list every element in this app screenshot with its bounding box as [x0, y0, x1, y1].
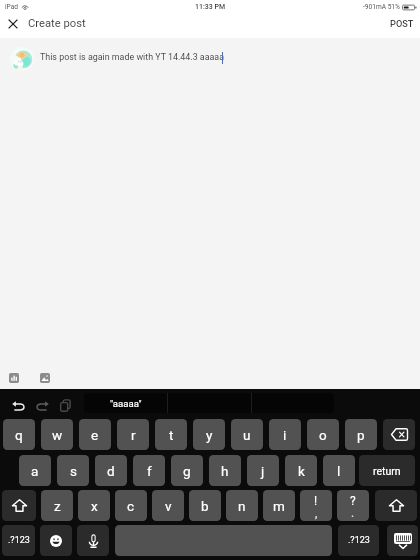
staticText: r	[131, 427, 136, 443]
button[interactable]: q	[3, 419, 35, 450]
staticText: y	[206, 427, 213, 443]
button[interactable]: Close	[3, 14, 23, 34]
button[interactable]: ?	[337, 490, 369, 521]
button[interactable]: y	[193, 419, 225, 450]
staticText: d	[107, 463, 115, 479]
button[interactable]: Redo	[34, 397, 51, 414]
button[interactable]: "aaaaa"	[84, 393, 167, 413]
staticText: "aaaaa"	[110, 398, 142, 409]
button[interactable]: Shift	[2, 490, 36, 521]
staticText: w	[52, 427, 63, 443]
staticText: o	[319, 427, 327, 443]
button[interactable]: n	[226, 490, 258, 521]
staticText: .	[351, 506, 355, 520]
staticText: z	[54, 498, 61, 514]
staticText: n	[238, 498, 246, 514]
button[interactable]: k	[285, 455, 317, 486]
staticText: s	[70, 463, 77, 479]
staticText: .?123	[348, 535, 370, 546]
button[interactable]: Dictate	[77, 525, 109, 556]
button[interactable]: g	[171, 455, 203, 486]
staticText: t	[169, 427, 174, 443]
staticText: q	[15, 427, 23, 443]
button[interactable]: x	[78, 490, 110, 521]
button[interactable]: Emoji	[40, 525, 72, 556]
staticText: return	[373, 465, 401, 477]
button[interactable]: v	[152, 490, 184, 521]
staticText: ,	[315, 506, 318, 520]
button[interactable]: Hide keyboard	[387, 525, 418, 556]
button[interactable]: o	[307, 419, 339, 450]
button[interactable]: l	[323, 455, 355, 486]
staticText: iPad	[5, 3, 19, 11]
staticText: e	[91, 427, 99, 443]
staticText: f	[147, 463, 152, 479]
button[interactable]: .?123	[338, 525, 379, 556]
button[interactable]: p	[345, 419, 377, 450]
button[interactable]: Image	[40, 373, 50, 383]
button[interactable]: Backspace	[383, 419, 415, 450]
button[interactable]: c	[115, 490, 147, 521]
staticText: This post is again made with YT 14.44.3 …	[40, 52, 225, 62]
staticText: ?	[350, 494, 356, 508]
button[interactable]: r	[117, 419, 149, 450]
staticText: m	[273, 498, 285, 514]
button[interactable]: b	[189, 490, 221, 521]
button[interactable]: d	[95, 455, 127, 486]
button[interactable]: POST	[388, 16, 416, 31]
staticText: g	[183, 463, 191, 479]
button[interactable]: Poll	[9, 373, 19, 383]
button[interactable]: m	[263, 490, 295, 521]
button[interactable]: z	[41, 490, 73, 521]
button[interactable]: e	[79, 419, 111, 450]
button[interactable]: !	[300, 490, 332, 521]
staticText: !	[314, 494, 318, 508]
button[interactable]: w	[41, 419, 73, 450]
button[interactable]: s	[57, 455, 89, 486]
button[interactable]: f	[133, 455, 165, 486]
staticText: i	[283, 427, 287, 443]
button[interactable]: t	[155, 419, 187, 450]
staticText: c	[127, 498, 135, 514]
staticText: x	[91, 498, 98, 514]
staticText: POST	[390, 18, 414, 29]
staticText: j	[261, 463, 265, 479]
button[interactable]: return	[359, 455, 415, 486]
button[interactable]	[115, 525, 332, 556]
staticText: p	[357, 427, 365, 443]
staticText: k	[298, 463, 305, 479]
button[interactable]: u	[231, 419, 263, 450]
staticText: .?123	[8, 535, 30, 546]
staticText: v	[165, 498, 172, 514]
staticText: l	[337, 463, 341, 479]
button[interactable]: j	[247, 455, 279, 486]
staticText: Create post	[28, 17, 86, 30]
staticText: u	[243, 427, 251, 443]
button[interactable]: Undo	[10, 397, 27, 414]
staticText: b	[201, 498, 209, 514]
button[interactable]: Paste	[57, 397, 74, 414]
staticText: h	[221, 463, 229, 479]
staticText: 11:33 PM	[195, 3, 226, 11]
staticText: -901mA 51%	[363, 3, 400, 11]
button[interactable]: h	[209, 455, 241, 486]
button[interactable]: a	[19, 455, 51, 486]
button[interactable]: i	[269, 419, 301, 450]
button[interactable]: .?123	[2, 525, 35, 556]
staticText: a	[31, 463, 39, 479]
button[interactable]: Shift	[375, 490, 417, 521]
